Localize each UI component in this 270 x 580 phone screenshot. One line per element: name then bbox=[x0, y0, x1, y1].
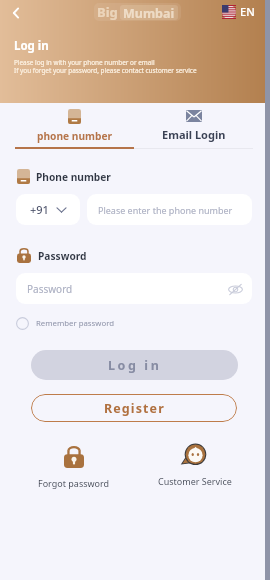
staticText: Email Login bbox=[162, 127, 226, 142]
button[interactable]: Register bbox=[31, 394, 237, 422]
staticText: Remember password bbox=[36, 318, 115, 329]
staticText: Please log in with your phone number or … bbox=[14, 58, 155, 67]
staticText: phone number bbox=[37, 129, 113, 143]
button[interactable]: phone number bbox=[15, 103, 134, 148]
button[interactable]: Log in bbox=[31, 350, 238, 380]
button[interactable]: Password bbox=[16, 273, 252, 304]
button[interactable]: Email Login bbox=[134, 103, 253, 148]
staticText: Customer Service bbox=[158, 475, 232, 487]
staticText: Log in bbox=[108, 357, 162, 374]
staticText: Please enter the phone number bbox=[98, 204, 233, 216]
staticText: Phone number bbox=[36, 170, 111, 184]
staticText: Password bbox=[38, 249, 87, 263]
staticText: Forgot password bbox=[38, 477, 110, 489]
staticText: Log in bbox=[14, 38, 49, 54]
staticText: +91 bbox=[30, 202, 49, 217]
staticText: Big bbox=[97, 3, 118, 21]
button[interactable]: Please enter the phone number bbox=[87, 194, 252, 225]
button[interactable]: EN bbox=[222, 4, 255, 19]
staticText: Register bbox=[104, 400, 165, 417]
button[interactable]: Forgot password bbox=[30, 446, 118, 489]
staticText: Mumbai bbox=[123, 5, 175, 20]
button[interactable]: Customer Service bbox=[151, 443, 239, 487]
button[interactable]: +91 bbox=[16, 194, 80, 225]
staticText: If you forget your password, please cont… bbox=[14, 66, 197, 75]
staticText: EN bbox=[240, 4, 255, 19]
button[interactable]: Show password bbox=[226, 280, 244, 298]
staticText: Password bbox=[27, 282, 73, 296]
button[interactable]: Remember password bbox=[16, 317, 115, 330]
button[interactable]: Back bbox=[6, 3, 26, 23]
